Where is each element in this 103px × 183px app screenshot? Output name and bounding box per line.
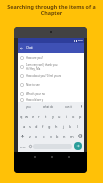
button[interactable]: c	[40, 131, 47, 141]
staticText: How about you? I feel yours	[26, 74, 62, 78]
staticText: m	[70, 134, 74, 139]
button[interactable]: g	[46, 121, 53, 131]
button[interactable]: How old are y	[18, 98, 84, 102]
button[interactable]: Shift	[18, 131, 26, 141]
button[interactable]: f	[39, 121, 46, 131]
staticText: you	[26, 105, 31, 109]
button[interactable]: j	[60, 121, 67, 131]
staticText: x	[35, 134, 38, 139]
staticText: s	[29, 124, 31, 129]
button[interactable]: p	[77, 111, 84, 121]
button[interactable]: y	[49, 111, 56, 121]
button[interactable]: I am very well, thank you	[18, 62, 84, 71]
staticText: Searching through the items of a Chapter	[7, 3, 96, 16]
staticText: How are you?	[26, 56, 43, 60]
button[interactable]: w	[24, 111, 30, 121]
staticText: e	[32, 114, 35, 119]
button[interactable]: Send	[74, 142, 82, 150]
button[interactable]: q	[18, 111, 24, 121]
staticText: Hi! Hey, Ma	[26, 67, 41, 71]
button[interactable]: What's your na	[18, 89, 84, 98]
button[interactable]: u	[56, 111, 63, 121]
staticText: 4:15	[78, 39, 83, 42]
button[interactable]: How about you? I feel yours	[18, 71, 84, 80]
button[interactable]: i	[63, 111, 70, 121]
staticText: v	[50, 134, 52, 139]
staticText: n	[63, 134, 66, 139]
staticText: z	[29, 134, 31, 139]
staticText: g	[48, 124, 51, 129]
staticText: what do	[43, 105, 54, 109]
button[interactable]: Nice to see	[18, 80, 84, 89]
staticText: q	[20, 114, 23, 119]
button[interactable]: Backspace	[75, 131, 84, 141]
button[interactable]: Navigate up	[19, 46, 24, 51]
button[interactable]: o	[70, 111, 77, 121]
staticText: l	[77, 124, 79, 129]
staticText: y	[52, 114, 54, 119]
staticText: can it	[65, 105, 72, 109]
button[interactable]: what do	[38, 102, 58, 111]
staticText: d	[35, 124, 38, 129]
button[interactable]: t	[42, 111, 49, 121]
button[interactable]: Emoji	[27, 141, 33, 151]
staticText: ?123	[20, 145, 26, 148]
button[interactable]: h	[53, 121, 60, 131]
staticText: j	[63, 124, 65, 129]
staticText: o	[72, 114, 75, 119]
button[interactable]: s	[27, 121, 33, 131]
staticText: Nice to see	[26, 83, 40, 87]
button[interactable]: can it	[58, 102, 78, 111]
staticText: w	[25, 114, 29, 119]
button[interactable]: k	[67, 121, 74, 131]
button[interactable]: ?123	[18, 141, 27, 151]
staticText: a	[23, 124, 26, 129]
staticText: How old are y	[26, 98, 44, 102]
button[interactable]: v	[47, 131, 54, 141]
button[interactable]: Navigate up	[18, 43, 84, 53]
button[interactable]: Back	[32, 154, 37, 159]
staticText: u	[58, 114, 61, 119]
staticText: t	[45, 114, 47, 119]
button[interactable]: b	[54, 131, 61, 141]
staticText: I am very well, thank you	[26, 63, 58, 67]
staticText: b	[56, 134, 59, 139]
staticText: r	[38, 114, 40, 119]
button[interactable]: l	[74, 121, 81, 131]
button[interactable]: x	[33, 131, 40, 141]
button[interactable]: a	[21, 121, 27, 131]
button[interactable]: n	[61, 131, 68, 141]
button[interactable]: How are you?	[18, 53, 84, 62]
button[interactable]: Home	[49, 154, 54, 159]
staticText: k	[69, 124, 72, 129]
button[interactable]: d	[33, 121, 39, 131]
staticText: c	[43, 134, 45, 139]
staticText: What's your na	[26, 92, 45, 96]
staticText: h	[55, 124, 58, 129]
button[interactable]: e	[30, 111, 36, 121]
button[interactable]: r	[36, 111, 42, 121]
staticText: f	[42, 124, 44, 129]
button[interactable]: Recent apps	[66, 154, 71, 159]
button[interactable]: Voice input	[78, 102, 84, 111]
button[interactable]: m	[68, 131, 75, 141]
staticText: Chat	[26, 46, 33, 50]
staticText: i	[66, 114, 68, 119]
button[interactable]: z	[26, 131, 33, 141]
button[interactable]: you	[18, 102, 38, 111]
staticText: p	[79, 114, 82, 119]
